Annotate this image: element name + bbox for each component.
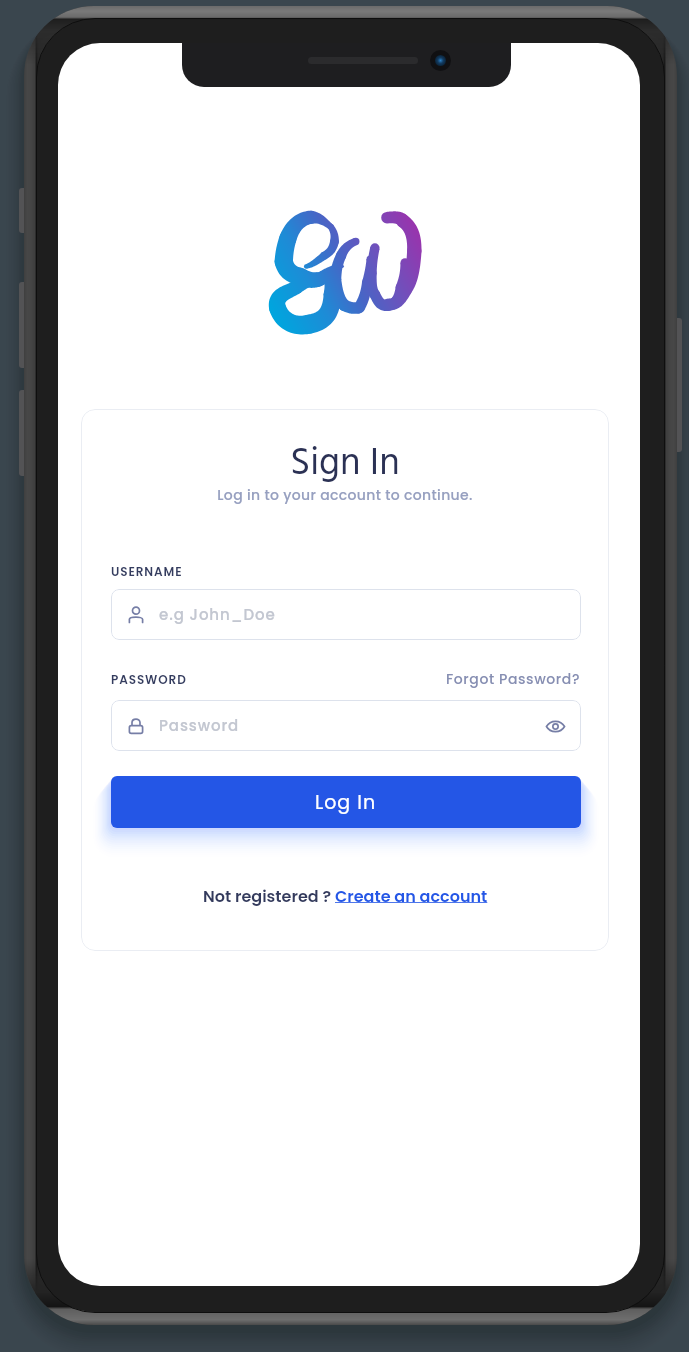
button[interactable]: e.g John_Doe bbox=[111, 589, 581, 640]
button[interactable]: Show password bbox=[543, 714, 567, 738]
button[interactable]: Forgot Password? bbox=[446, 669, 581, 689]
staticText: Create an account bbox=[335, 885, 488, 907]
button[interactable]: Password bbox=[111, 700, 581, 751]
staticText: Forgot Password? bbox=[446, 669, 581, 689]
staticText: Log In bbox=[315, 789, 377, 816]
button[interactable]: Create an account bbox=[335, 885, 488, 907]
staticText: Not registered ? bbox=[203, 885, 335, 907]
staticText: Sign In bbox=[81, 434, 609, 495]
staticText: Password bbox=[159, 715, 240, 736]
button[interactable]: Log In bbox=[111, 776, 581, 828]
staticText: e.g John_Doe bbox=[159, 604, 276, 625]
staticText: USERNAME bbox=[111, 563, 183, 580]
staticText: PASSWORD bbox=[111, 671, 187, 688]
staticText: Log in to your account to continue. bbox=[81, 485, 609, 505]
